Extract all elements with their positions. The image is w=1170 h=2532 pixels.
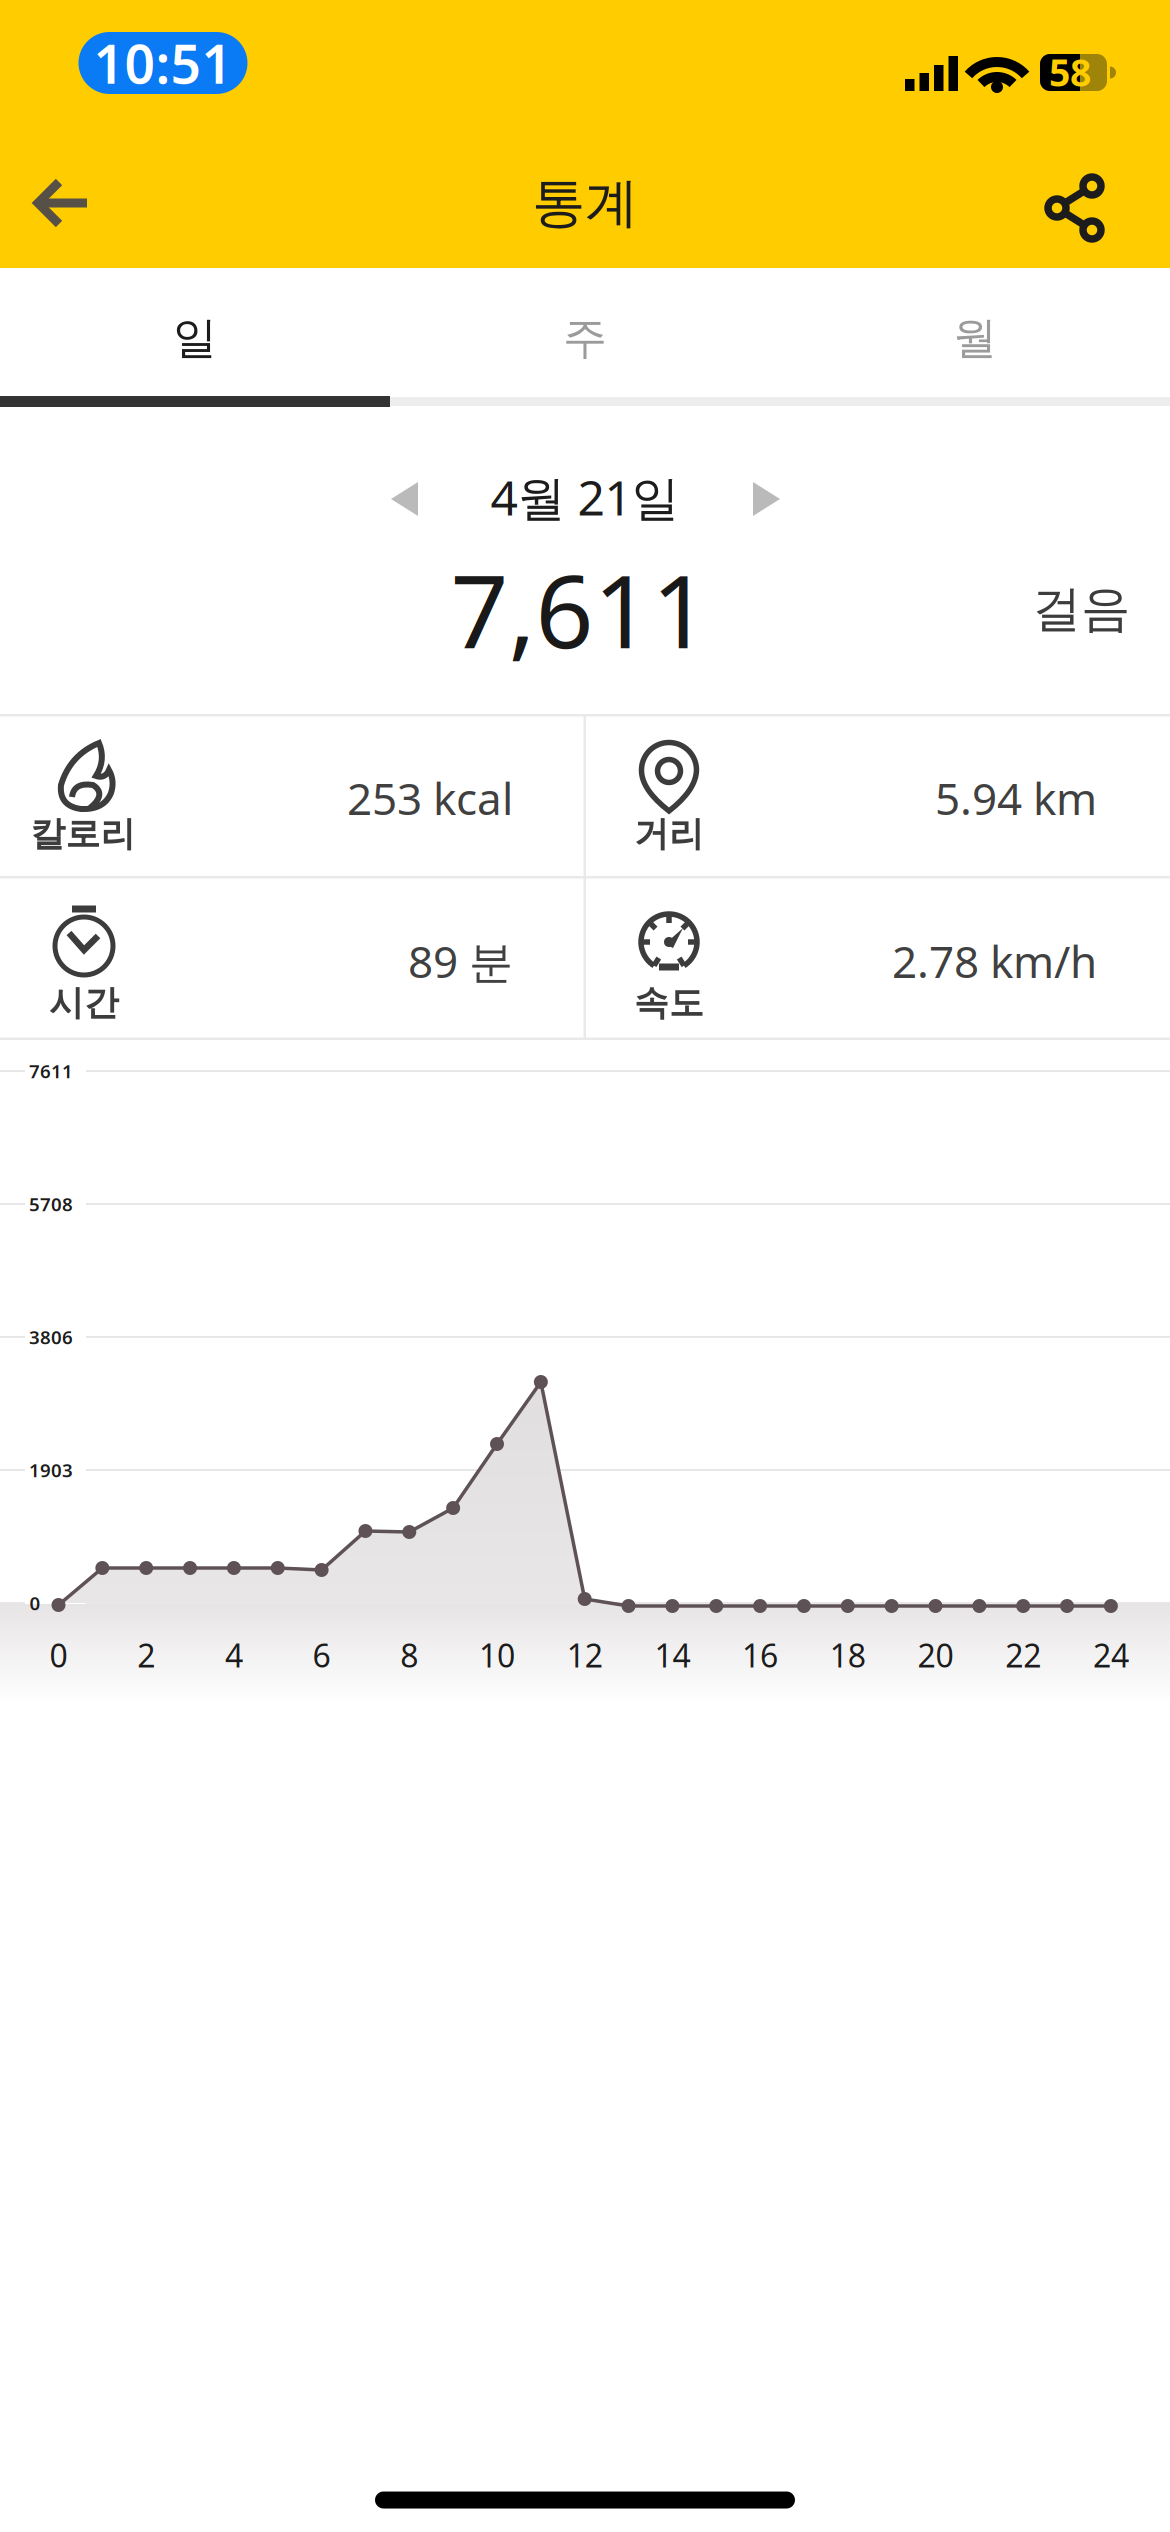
staticText: 20	[917, 1634, 953, 1676]
staticText: 10	[479, 1634, 515, 1676]
staticText: 월	[953, 311, 997, 365]
staticText: 2.78 km/h	[892, 932, 1097, 990]
staticText: 1903	[29, 1458, 73, 1482]
staticText: 5708	[29, 1192, 73, 1216]
staticText: 3806	[29, 1325, 73, 1349]
staticText: 통계	[532, 170, 638, 236]
button[interactable]: Next day	[728, 461, 804, 537]
button[interactable]: 주	[390, 278, 780, 398]
staticText: 253 kcal	[347, 769, 513, 827]
staticText: 7,611	[450, 542, 709, 676]
staticText: 18	[830, 1634, 866, 1676]
staticText: 4	[225, 1634, 243, 1676]
staticText: 8	[400, 1634, 418, 1676]
staticText: 시간	[49, 982, 119, 1024]
staticText: 7611	[29, 1059, 73, 1083]
staticText: 일	[173, 311, 217, 365]
staticText: 10:51	[93, 28, 232, 98]
staticText: 주	[563, 311, 607, 365]
staticText: 0	[29, 1591, 40, 1615]
staticText: 0	[49, 1634, 67, 1676]
button[interactable]: Back	[33, 168, 91, 238]
staticText: 2	[137, 1634, 155, 1676]
staticText: 89 분	[408, 932, 513, 990]
staticText: 걸음	[1032, 579, 1130, 639]
staticText: 12	[567, 1634, 603, 1676]
staticText: 거리	[634, 813, 704, 855]
staticText: 58	[1049, 47, 1091, 97]
staticText: 22	[1005, 1634, 1041, 1676]
staticText: 6	[313, 1634, 331, 1676]
staticText: 14	[654, 1634, 690, 1676]
staticText: 24	[1093, 1634, 1129, 1676]
button[interactable]: Share	[1037, 163, 1113, 239]
staticText: 16	[742, 1634, 778, 1676]
staticText: 속도	[634, 982, 704, 1024]
staticText: 4월 21일	[490, 465, 679, 529]
staticText: 칼로리	[30, 813, 135, 855]
button[interactable]: Previous day	[367, 461, 443, 537]
staticText: 5.94 km	[935, 769, 1097, 827]
button[interactable]: Time	[78, 32, 247, 94]
button[interactable]: 일	[0, 278, 390, 398]
button[interactable]: 월	[780, 278, 1170, 398]
